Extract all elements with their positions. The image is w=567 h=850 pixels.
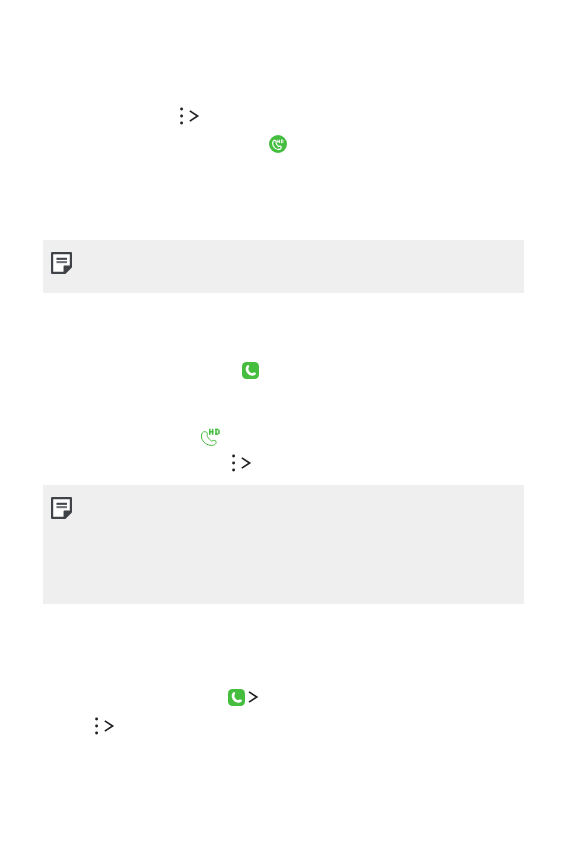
button[interactable]: Phone app [228, 689, 245, 706]
button[interactable]: Phone app, then next step [228, 688, 258, 706]
button[interactable]: Phone app [242, 362, 259, 379]
button[interactable]: Note [43, 485, 524, 604]
button[interactable]: HD voice [200, 428, 220, 446]
button[interactable]: More options, then next step [95, 717, 115, 735]
button[interactable]: More options, then next step [232, 454, 252, 472]
button[interactable]: HD voice call [269, 135, 287, 153]
button[interactable]: More options, then next step [180, 107, 200, 125]
button[interactable]: Note [43, 240, 524, 293]
